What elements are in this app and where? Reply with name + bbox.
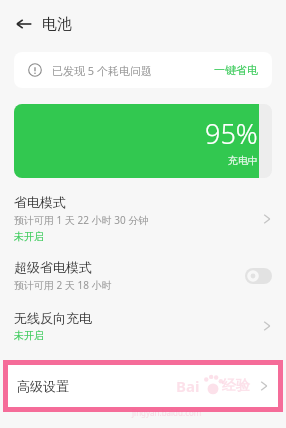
button[interactable]: 省电模式: [0, 192, 286, 245]
staticText: 95%: [205, 115, 258, 152]
staticText: jingyan.baidu.com: [132, 407, 202, 418]
button[interactable]: 超级省电模式 开关: [245, 268, 272, 284]
staticText: 超级省电模式: [14, 259, 92, 275]
staticText: Bai: [176, 376, 200, 396]
button[interactable]: 已发现 5 个耗电问题: [14, 52, 272, 88]
staticText: 未开启: [14, 230, 44, 243]
staticText: 高级设置: [17, 378, 69, 394]
staticText: 一键省电: [214, 63, 258, 77]
button[interactable]: 95%: [14, 104, 272, 178]
button[interactable]: 超级省电模式: [0, 257, 286, 294]
staticText: 充电中: [228, 154, 258, 167]
staticText: 已发现 5 个耗电问题: [52, 63, 153, 78]
staticText: 电池: [42, 15, 72, 34]
staticText: 未开启: [14, 329, 44, 342]
staticText: 经验: [222, 377, 250, 395]
staticText: 预计可用 2 天 18 小时: [14, 278, 112, 292]
staticText: 无线反向充电: [14, 310, 92, 326]
staticText: 省电模式: [14, 194, 66, 210]
staticText: 预计可用 1 天 22 小时 30 分钟: [14, 213, 149, 227]
button[interactable]: 无线反向充电: [0, 308, 286, 344]
button[interactable]: Back: [10, 10, 38, 38]
button[interactable]: Bai: [8, 365, 278, 407]
